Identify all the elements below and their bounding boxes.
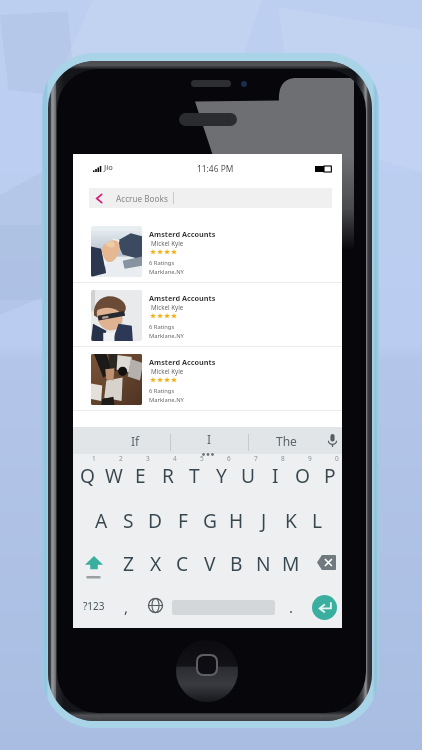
- staticText: Marklane,NY: [149, 332, 184, 340]
- staticText: 2: [119, 454, 123, 463]
- button[interactable]: Voice input: [322, 427, 342, 454]
- staticText: If: [131, 433, 140, 449]
- button[interactable]: P: [315, 454, 342, 497]
- button[interactable]: F: [167, 497, 194, 540]
- staticText: W: [105, 462, 123, 488]
- button[interactable]: .: [278, 583, 302, 626]
- button[interactable]: I: [261, 454, 288, 497]
- staticText: 7: [254, 454, 258, 463]
- staticText: E: [135, 462, 146, 488]
- button[interactable]: U: [234, 454, 261, 497]
- button[interactable]: Space: [165, 583, 278, 626]
- button[interactable]: S: [113, 497, 140, 540]
- button[interactable]: Enter: [302, 583, 342, 626]
- button[interactable]: D: [140, 497, 167, 540]
- staticText: F: [178, 507, 188, 533]
- button[interactable]: Y: [207, 454, 234, 497]
- staticText: H: [229, 507, 244, 533]
- button[interactable]: W: [99, 454, 126, 497]
- button[interactable]: J: [248, 497, 275, 540]
- staticText: L: [312, 507, 323, 533]
- staticText: 11:46 PM: [197, 163, 234, 174]
- staticText: G: [203, 507, 217, 533]
- staticText: Jio: [104, 162, 113, 172]
- staticText: Q: [80, 462, 95, 488]
- button[interactable]: If: [73, 427, 170, 454]
- staticText: Amsterd Accounts: [149, 293, 216, 303]
- staticText: Amsterd Accounts: [149, 357, 216, 367]
- button[interactable]: Amsterd Accounts: [73, 219, 342, 283]
- button[interactable]: A: [86, 497, 113, 540]
- button[interactable]: B: [220, 540, 247, 583]
- staticText: 6: [227, 454, 231, 463]
- staticText: N: [256, 550, 271, 576]
- staticText: Marklane,NY: [149, 268, 184, 276]
- staticText: 6 Ratings: [149, 259, 175, 267]
- button[interactable]: Q: [73, 454, 99, 497]
- button[interactable]: O: [288, 454, 315, 497]
- button[interactable]: V: [193, 540, 220, 583]
- button[interactable]: H: [221, 497, 248, 540]
- staticText: X: [150, 550, 162, 576]
- staticText: 6 Ratings: [149, 387, 175, 395]
- staticText: S: [123, 507, 134, 533]
- staticText: Z: [123, 550, 134, 576]
- staticText: The: [276, 433, 297, 449]
- button[interactable]: I: [171, 427, 248, 454]
- staticText: U: [241, 462, 256, 488]
- staticText: 6 Ratings: [149, 323, 175, 331]
- staticText: Amsterd Accounts: [149, 229, 216, 239]
- staticText: Mickel Kyle: [151, 303, 184, 311]
- staticText: Mickel Kyle: [151, 367, 184, 375]
- staticText: D: [148, 507, 163, 533]
- staticText: Marklane,NY: [149, 396, 184, 404]
- button[interactable]: X: [139, 540, 166, 583]
- button[interactable]: Amsterd Accounts: [73, 347, 342, 411]
- staticText: 5: [200, 454, 204, 463]
- staticText: A: [95, 507, 108, 533]
- button[interactable]: L: [302, 497, 329, 540]
- button[interactable]: Shift: [73, 540, 112, 583]
- staticText: M: [282, 550, 300, 576]
- button[interactable]: K: [275, 497, 302, 540]
- staticText: B: [230, 550, 243, 576]
- staticText: Y: [216, 462, 227, 488]
- staticText: 0: [335, 454, 339, 463]
- button[interactable]: R: [153, 454, 180, 497]
- button[interactable]: E: [126, 454, 153, 497]
- button[interactable]: Amsterd Accounts: [73, 283, 342, 347]
- staticText: J: [261, 507, 267, 533]
- button[interactable]: Z: [112, 540, 139, 583]
- button[interactable]: T: [180, 454, 207, 497]
- staticText: O: [295, 462, 310, 488]
- button[interactable]: G: [194, 497, 221, 540]
- staticText: 3: [146, 454, 150, 463]
- staticText: 1: [92, 454, 96, 463]
- button[interactable]: M: [274, 540, 301, 583]
- staticText: 8: [281, 454, 285, 463]
- staticText: 9: [308, 454, 312, 463]
- staticText: ?123: [83, 599, 105, 613]
- staticText: R: [162, 462, 174, 488]
- staticText: T: [189, 462, 200, 488]
- button[interactable]: Accrue Books: [89, 188, 332, 208]
- staticText: K: [285, 507, 297, 533]
- button[interactable]: Backspace: [301, 540, 342, 583]
- staticText: P: [324, 462, 336, 488]
- staticText: I: [272, 462, 279, 488]
- staticText: 4: [173, 454, 177, 463]
- staticText: I: [207, 431, 212, 447]
- button[interactable]: The: [249, 427, 322, 454]
- staticText: V: [204, 550, 216, 576]
- button[interactable]: ,: [111, 583, 137, 626]
- button[interactable]: Switch language: [137, 583, 165, 626]
- staticText: Mickel Kyle: [151, 239, 184, 247]
- staticText: C: [176, 550, 189, 576]
- button[interactable]: ?123: [73, 583, 111, 626]
- button[interactable]: N: [247, 540, 274, 583]
- staticText: ,: [124, 597, 129, 617]
- button[interactable]: C: [166, 540, 193, 583]
- staticText: Accrue Books: [116, 193, 168, 204]
- staticText: .: [289, 597, 294, 617]
